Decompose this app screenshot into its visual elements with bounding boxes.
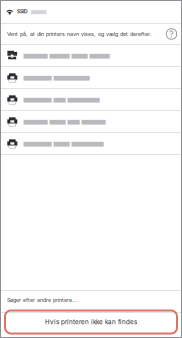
staticText: ▆▆▆▆▆▆▆ ▆▆▆▆▆▆▆▆▆ bbox=[24, 74, 90, 81]
staticText: Søger efter andre printere... bbox=[7, 297, 78, 303]
button[interactable]: Hjælp bbox=[164, 24, 178, 44]
staticText: ? bbox=[169, 28, 174, 40]
button[interactable]: ▆▆▆▆▆▆▆ ▆▆▆▆▆▆▆▆▆ bbox=[0, 67, 182, 89]
staticText: Vent på, at din printers navn vises, og … bbox=[7, 31, 152, 37]
staticText: ▆▆▆▆▆ bbox=[31, 9, 46, 14]
staticText: Hvis printeren ikke kan findes bbox=[45, 318, 137, 326]
staticText: SSID bbox=[17, 9, 27, 14]
staticText: ▆▆▆▆▆▆▆ ▆▆▆ ▆▆▆▆▆▆▆▆ bbox=[24, 96, 100, 103]
staticText: ▆▆▆▆▆▆ ▆▆▆▆ ▆▆▆ ▆▆▆▆▆▆ bbox=[24, 118, 106, 125]
button[interactable]: Hvis printeren ikke kan findes bbox=[0, 310, 182, 333]
button[interactable]: ▆▆▆▆▆▆▆ ▆▆▆ ▆▆▆▆▆▆▆▆ bbox=[0, 89, 182, 111]
staticText: ▆▆▆▆▆▆▆ ▆▆▆▆ ▆▆▆▆▆▆▆▆ bbox=[24, 140, 104, 147]
button[interactable]: ▆▆▆▆▆▆▆ ▆▆▆▆ ▆▆▆▆▆▆▆▆ bbox=[0, 133, 182, 155]
button[interactable]: ▆▆▆▆▆▆ ▆▆▆▆▆ ▆▆▆▆ ▆▆▆▆▆ bbox=[0, 45, 182, 67]
staticText: ▆▆▆▆▆▆ ▆▆▆▆▆ ▆▆▆▆ ▆▆▆▆▆ bbox=[24, 52, 110, 59]
button[interactable]: ▆▆▆▆▆▆ ▆▆▆▆ ▆▆▆ ▆▆▆▆▆▆ bbox=[0, 111, 182, 133]
